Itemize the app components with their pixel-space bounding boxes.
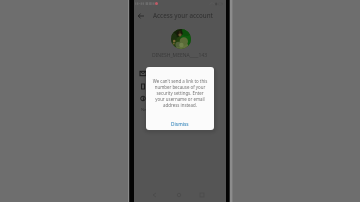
staticText: Send an email to d••••••@gmail.com — [150, 68, 221, 80]
staticText: Send an SMS to +91 ••••••43 — [150, 84, 209, 90]
button[interactable]: Dismiss — [146, 119, 214, 130]
button[interactable]: Back — [134, 9, 147, 22]
button[interactable]: Log in with Facebook — [134, 92, 226, 105]
staticText: Need more help? — [141, 107, 174, 113]
staticText: Log in with Facebook — [150, 96, 195, 102]
button[interactable]: Send an SMS to +91 ••••••43 — [134, 80, 226, 93]
staticText: Dismiss — [171, 121, 189, 128]
staticText: Access your account — [153, 11, 213, 19]
button[interactable]: Send an email to d••••••@gmail.com — [134, 67, 226, 80]
staticText: DINESH_MEENA____143 — [152, 52, 208, 59]
staticText: We can't send a link to this number beca… — [152, 78, 208, 108]
